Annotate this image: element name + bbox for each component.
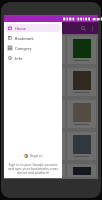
button[interactable]: Open navigation drawer — [6, 24, 15, 33]
button[interactable]: Bookmark — [5, 34, 61, 42]
button[interactable] — [67, 68, 96, 96]
button[interactable] — [6, 164, 34, 177]
button[interactable]: Sign in — [19, 152, 48, 159]
button[interactable]: Home — [5, 24, 61, 32]
button[interactable]: Search — [79, 24, 88, 33]
button[interactable] — [36, 100, 65, 128]
button[interactable] — [6, 36, 34, 64]
button[interactable] — [67, 132, 96, 160]
button[interactable]: Category — [5, 44, 61, 52]
button[interactable] — [36, 36, 65, 64]
button[interactable] — [36, 164, 65, 177]
button[interactable]: Info — [5, 54, 61, 62]
staticText: Sign in to your Google account and sync … — [7, 162, 59, 175]
button[interactable]: More options — [88, 24, 96, 32]
button[interactable] — [36, 68, 65, 96]
staticText: Bookmarks — [17, 25, 45, 32]
button[interactable] — [67, 36, 96, 64]
staticText: Home — [15, 26, 26, 31]
staticText: Sign in — [30, 153, 43, 158]
button[interactable] — [36, 132, 65, 160]
button[interactable] — [6, 132, 34, 160]
staticText: Bookmark — [15, 36, 34, 41]
staticText: Category — [15, 46, 32, 51]
staticText: Info — [15, 56, 23, 61]
button[interactable] — [67, 164, 96, 177]
button[interactable] — [67, 100, 96, 128]
